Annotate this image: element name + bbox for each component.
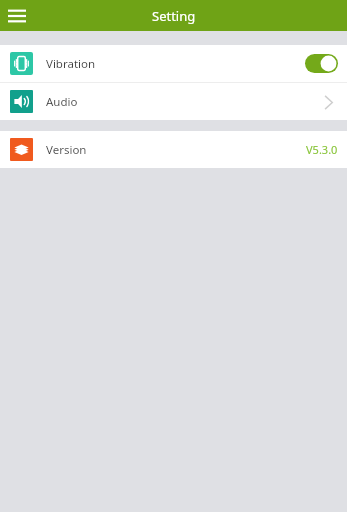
- button[interactable]: Open Audio settings: [318, 92, 338, 112]
- button[interactable]: Audio: [0, 83, 347, 120]
- button[interactable]: Version: [0, 131, 347, 168]
- staticText: Audio: [46, 94, 78, 110]
- staticText: Vibration: [46, 56, 96, 72]
- button[interactable]: Vibration toggle, on: [305, 54, 338, 73]
- staticText: Version: [46, 142, 87, 158]
- staticText: Setting: [152, 7, 196, 25]
- staticText: V5.3.0: [306, 142, 338, 157]
- button[interactable]: Vibration: [0, 45, 347, 82]
- button[interactable]: Open navigation menu: [0, 0, 34, 31]
